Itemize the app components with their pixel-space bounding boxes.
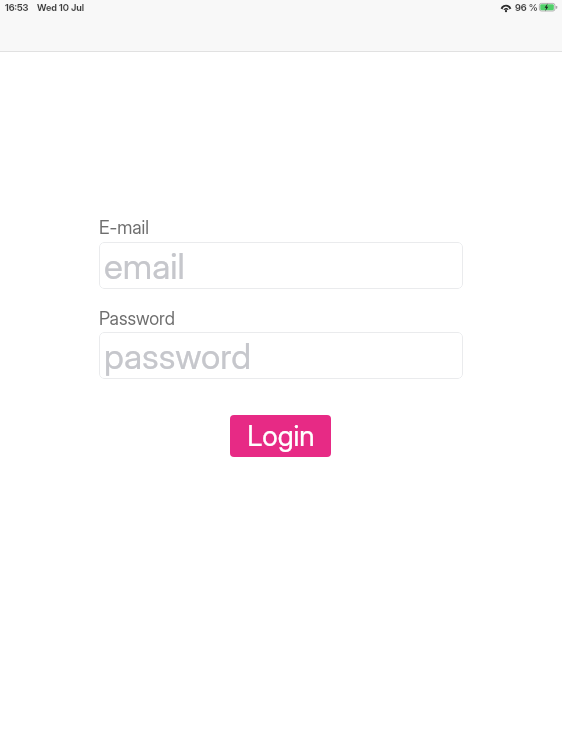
- staticText: E-mail: [99, 217, 149, 239]
- staticText: Password: [99, 308, 175, 330]
- staticText: Wed 10 Jul: [37, 2, 85, 13]
- staticText: 16:53: [5, 2, 29, 13]
- staticText: Login: [247, 419, 315, 453]
- other: Wi-Fi signal: [500, 3, 512, 15]
- staticText: password: [104, 335, 251, 377]
- staticText: email: [104, 245, 185, 287]
- other: Battery 96 percent charging: [539, 3, 558, 12]
- staticText: 96 %: [515, 2, 538, 13]
- button[interactable]: Login: [230, 415, 331, 457]
- button[interactable]: email: [99, 242, 463, 289]
- button[interactable]: password: [99, 332, 463, 379]
